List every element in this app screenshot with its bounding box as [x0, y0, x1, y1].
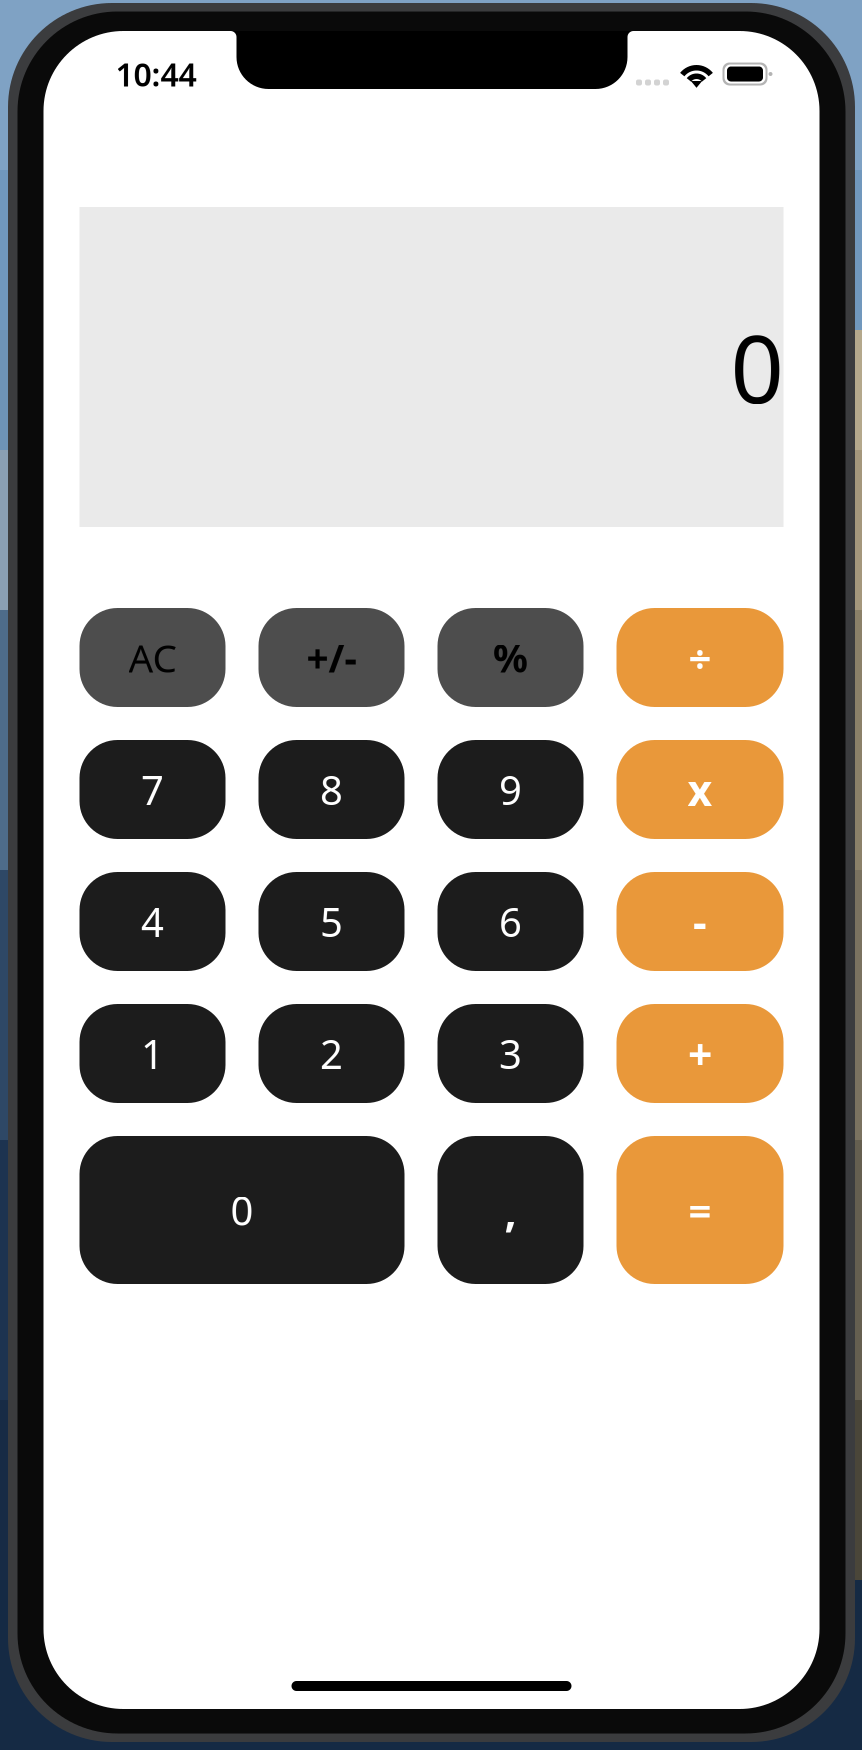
button[interactable]: x	[616, 740, 783, 839]
button[interactable]: 1	[79, 1004, 225, 1103]
staticText: =	[688, 1183, 711, 1236]
staticText: 9	[499, 763, 522, 816]
staticText: %	[493, 632, 528, 683]
button[interactable]: %	[437, 608, 583, 707]
button[interactable]: =	[616, 1136, 783, 1284]
staticText: 5	[320, 895, 343, 948]
button[interactable]: 3	[437, 1004, 583, 1103]
button[interactable]: 7	[79, 740, 225, 839]
staticText: ,	[504, 1182, 516, 1238]
button[interactable]: ,	[437, 1136, 583, 1284]
staticText: 10:44	[115, 53, 196, 95]
button[interactable]: 2	[258, 1004, 404, 1103]
staticText: 7	[141, 763, 164, 816]
button[interactable]: ÷	[616, 608, 783, 707]
staticText: 3	[499, 1027, 522, 1080]
staticText: AC	[128, 632, 176, 683]
staticText: 4	[141, 895, 164, 948]
staticText: -	[693, 893, 707, 950]
button[interactable]: 8	[258, 740, 404, 839]
staticText: 2	[320, 1027, 343, 1080]
button[interactable]: 6	[437, 872, 583, 971]
staticText: ÷	[688, 631, 711, 684]
button[interactable]: 4	[79, 872, 225, 971]
button[interactable]: AC	[79, 608, 225, 707]
staticText: x	[687, 761, 712, 818]
staticText: 0	[730, 305, 783, 429]
staticText: 6	[499, 895, 522, 948]
staticText: 1	[141, 1027, 164, 1080]
button[interactable]: 0	[79, 1136, 404, 1284]
button[interactable]: +/-	[258, 608, 404, 707]
button[interactable]: 5	[258, 872, 404, 971]
staticText: 0	[230, 1183, 253, 1236]
button[interactable]: +	[616, 1004, 783, 1103]
staticText: +	[688, 1025, 712, 1082]
button[interactable]: -	[616, 872, 783, 971]
staticText: +/-	[306, 632, 356, 683]
staticText: 8	[320, 763, 343, 816]
button[interactable]: 9	[437, 740, 583, 839]
